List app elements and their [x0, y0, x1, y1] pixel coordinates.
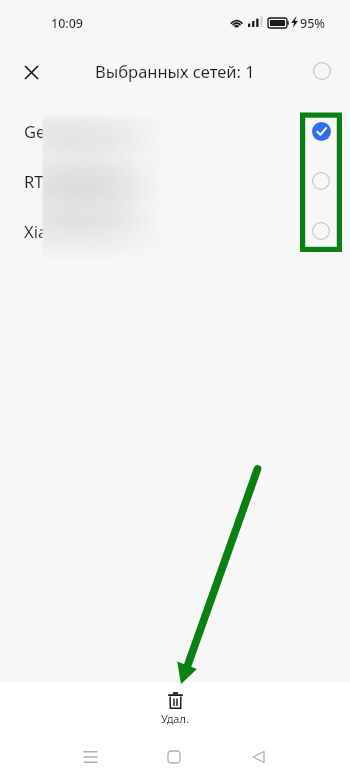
staticText: 95%: [300, 15, 325, 32]
staticText: Xia: [24, 220, 48, 242]
button[interactable]: Recents: [72, 739, 108, 775]
staticText: Ge: [24, 120, 46, 142]
button[interactable]: Back: [240, 739, 276, 775]
button[interactable]: Удал.: [139, 682, 211, 732]
button[interactable]: Ge: [0, 106, 350, 156]
button[interactable]: Xia: [0, 206, 350, 256]
button[interactable]: RT-: [0, 156, 350, 206]
button[interactable]: Select all: [302, 51, 342, 91]
staticText: Выбранных сетей: 1: [95, 60, 255, 82]
staticText: Удал.: [161, 711, 189, 726]
staticText: RT-: [24, 170, 49, 192]
button[interactable]: Home: [156, 739, 192, 775]
staticText: 10:09: [51, 15, 84, 32]
button[interactable]: Close: [11, 51, 51, 91]
